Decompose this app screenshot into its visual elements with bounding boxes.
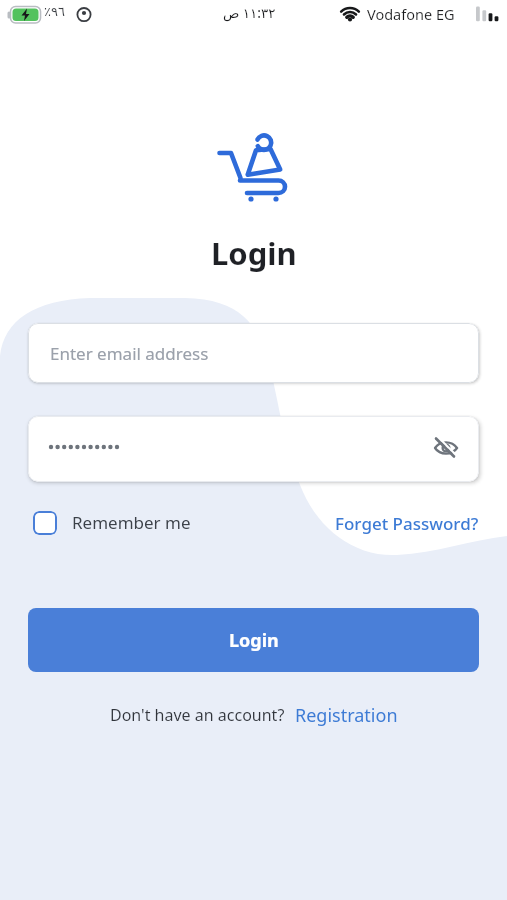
button[interactable]: Enter email address xyxy=(28,323,479,383)
staticText: Vodafone EG xyxy=(367,4,455,24)
button[interactable] xyxy=(33,511,57,535)
staticText: Remember me xyxy=(72,511,191,534)
button[interactable]: Login xyxy=(28,608,479,672)
staticText: ١١:٣٢ ص xyxy=(223,4,276,22)
staticText: Login xyxy=(211,232,297,274)
button[interactable] xyxy=(28,416,479,482)
button[interactable]: Forget Password? xyxy=(335,512,479,535)
button[interactable]: Registration xyxy=(295,703,398,728)
staticText: ٪٩٦ xyxy=(44,4,65,19)
staticText: Don't have an account? xyxy=(110,704,285,726)
staticText: Login xyxy=(229,628,279,653)
staticText: Enter email address xyxy=(50,342,209,365)
